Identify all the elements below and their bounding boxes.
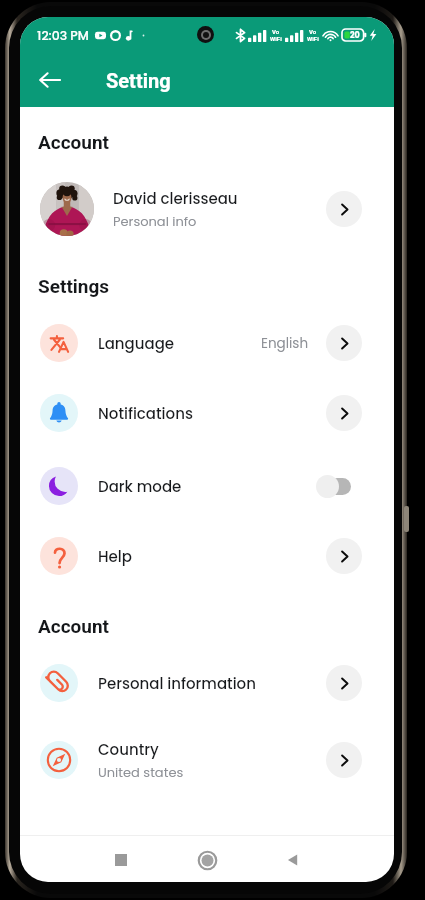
button[interactable]: Notifications (20, 378, 394, 448)
staticText: Help (98, 546, 132, 567)
staticText: WiFi (307, 35, 319, 42)
staticText: Personal info (113, 212, 197, 230)
staticText: 12:03 PM (37, 27, 89, 44)
button[interactable]: Recent apps (99, 837, 143, 881)
staticText: WiFi (270, 35, 282, 42)
staticText: Language (98, 333, 175, 354)
button[interactable]: Country (20, 725, 394, 795)
staticText: Settings (38, 275, 110, 297)
staticText: Country (98, 739, 159, 760)
staticText: Vo (309, 28, 317, 35)
staticText: 20 (350, 30, 360, 41)
staticText: Notifications (98, 403, 193, 424)
button[interactable]: David clerisseau (20, 174, 394, 244)
button[interactable]: Home (185, 837, 229, 881)
staticText: Account (38, 131, 110, 153)
button[interactable] (316, 475, 351, 498)
staticText: English (261, 334, 309, 353)
button[interactable]: Back (271, 837, 315, 881)
staticText: Dark mode (98, 476, 182, 497)
button[interactable]: Back (30, 60, 70, 100)
staticText: Vo (272, 28, 280, 35)
staticText: Personal information (98, 673, 256, 694)
staticText: David clerisseau (113, 188, 238, 209)
staticText: United states (98, 763, 184, 781)
staticText: Setting (106, 69, 171, 92)
button[interactable]: Personal information (20, 648, 394, 718)
button[interactable]: Dark mode (20, 451, 394, 521)
staticText: Account (38, 615, 110, 637)
button[interactable]: Language (20, 308, 394, 378)
button[interactable]: Help (20, 521, 394, 591)
